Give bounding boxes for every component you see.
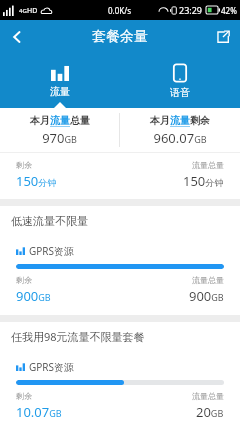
button[interactable]: GPRS资源 bbox=[0, 351, 240, 427]
button[interactable]: 语音 bbox=[120, 54, 240, 108]
staticText: 900GB bbox=[189, 287, 224, 305]
staticText: GPRS资源 bbox=[29, 244, 75, 258]
staticText: 任我用98元流量不限量套餐 bbox=[11, 329, 145, 344]
staticText: 150分钟 bbox=[16, 172, 57, 190]
staticText: GPRS资源 bbox=[29, 360, 75, 374]
staticText: 900GB bbox=[16, 287, 51, 305]
staticText: 0.0K/s bbox=[108, 5, 132, 16]
staticText: 10.07GB bbox=[16, 403, 62, 417]
staticText: 960.07GB bbox=[153, 129, 207, 147]
staticText: 流量总量 bbox=[192, 275, 224, 285]
button[interactable]: GPRS资源 bbox=[0, 235, 240, 315]
staticText: 剩余 bbox=[16, 391, 32, 401]
button[interactable]: Share bbox=[206, 20, 240, 54]
staticText: 本月流量剩余 bbox=[150, 114, 210, 127]
staticText: 套餐余量 bbox=[92, 28, 148, 46]
staticText: 970GB bbox=[42, 129, 77, 147]
staticText: 剩余 bbox=[16, 160, 32, 170]
staticText: 23:29 bbox=[179, 4, 203, 16]
button[interactable]: 流量 bbox=[0, 54, 120, 108]
staticText: 20GB bbox=[196, 403, 224, 417]
staticText: 4G bbox=[19, 7, 27, 15]
button[interactable]: Back bbox=[0, 20, 34, 54]
staticText: 42% bbox=[221, 5, 237, 16]
staticText: 150分钟 bbox=[183, 172, 224, 190]
staticText: 流量总量 bbox=[192, 160, 224, 170]
staticText: 本月流量总量 bbox=[30, 114, 90, 127]
staticText: 语音 bbox=[170, 86, 190, 99]
staticText: 流量 bbox=[50, 85, 70, 98]
staticText: 低速流量不限量 bbox=[11, 214, 88, 228]
staticText: HD bbox=[27, 6, 38, 16]
staticText: 剩余 bbox=[16, 275, 32, 285]
staticText: 流量总量 bbox=[192, 391, 224, 401]
